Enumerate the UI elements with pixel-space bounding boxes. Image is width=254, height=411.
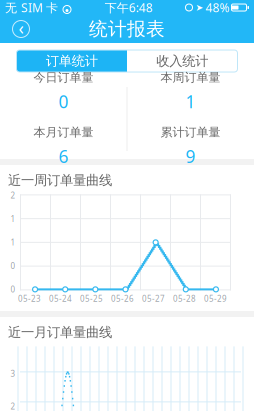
staticText: 05-26 bbox=[111, 293, 134, 304]
staticText: 本周订单量 bbox=[160, 70, 220, 85]
button[interactable]: 返回 bbox=[4, 15, 38, 43]
staticText: 下午6:48 bbox=[105, 0, 153, 15]
staticText: 05-29 bbox=[204, 293, 227, 304]
staticText: 05-25 bbox=[80, 293, 103, 304]
staticText: 近一周订单量曲线 bbox=[8, 172, 112, 188]
staticText: 2 bbox=[10, 401, 15, 411]
staticText: 统计报表 bbox=[89, 17, 165, 40]
staticText: 0 bbox=[10, 261, 15, 271]
staticText: 05-23 bbox=[18, 293, 41, 304]
staticText: 0 bbox=[58, 90, 68, 113]
staticText: 收入统计 bbox=[156, 53, 208, 69]
staticText: 9 bbox=[185, 145, 195, 168]
button[interactable]: 收入统计 bbox=[127, 50, 237, 72]
staticText: 近一月订单量曲线 bbox=[8, 324, 112, 340]
staticText: 05-27 bbox=[142, 293, 165, 304]
staticText: 1 bbox=[10, 237, 15, 248]
staticText: 1 bbox=[185, 90, 195, 113]
staticText: 累计订单量 bbox=[160, 125, 220, 140]
staticText: 05-24 bbox=[49, 293, 72, 304]
staticText: 48% bbox=[205, 0, 229, 15]
staticText: 无 SIM 卡 bbox=[5, 0, 58, 15]
staticText: 本月订单量 bbox=[33, 125, 93, 140]
staticText: 订单统计 bbox=[46, 53, 98, 69]
staticText: 3 bbox=[10, 368, 15, 379]
staticText: 今日订单量 bbox=[33, 70, 93, 85]
staticText: ‹ bbox=[18, 16, 23, 39]
staticText: 05-28 bbox=[173, 293, 196, 304]
staticText: 6 bbox=[58, 145, 68, 168]
staticText: ➤ bbox=[195, 2, 203, 13]
button[interactable]: 订单统计 bbox=[16, 50, 127, 72]
staticText: 1 bbox=[10, 214, 15, 224]
staticText: 0 bbox=[10, 284, 15, 295]
staticText: 2 bbox=[10, 190, 15, 201]
